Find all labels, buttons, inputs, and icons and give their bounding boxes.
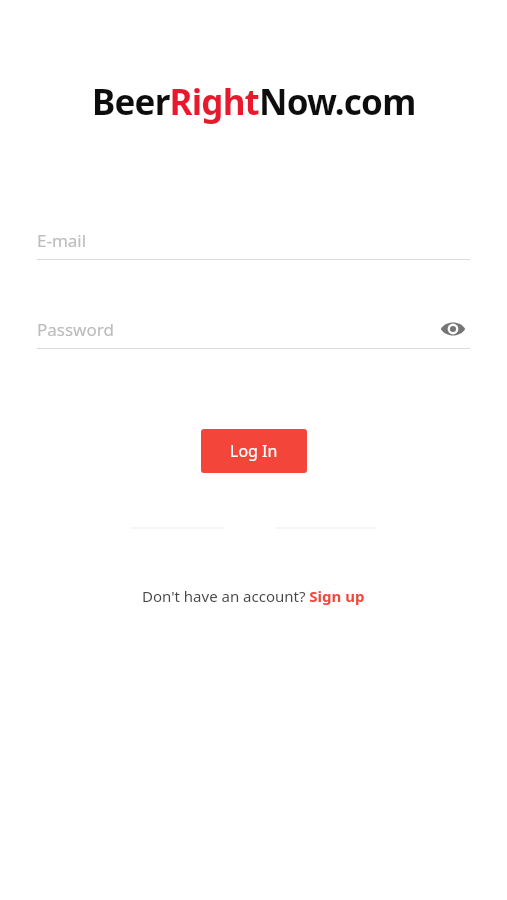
button[interactable]: Don't have an account? Sign up [142,586,365,606]
button[interactable]: Log In [201,429,307,473]
staticText: Password [37,318,114,341]
button[interactable]: Password [37,311,470,349]
staticText: Log In [230,440,278,462]
staticText: E-mail [37,229,87,252]
button[interactable]: E-mail [37,222,470,260]
staticText: BeerRightNow.com [92,78,416,126]
button[interactable]: BeerRightNow.com [92,78,416,126]
button[interactable]: Show password [436,312,470,346]
staticText: Don't have an account? Sign up [142,586,365,606]
